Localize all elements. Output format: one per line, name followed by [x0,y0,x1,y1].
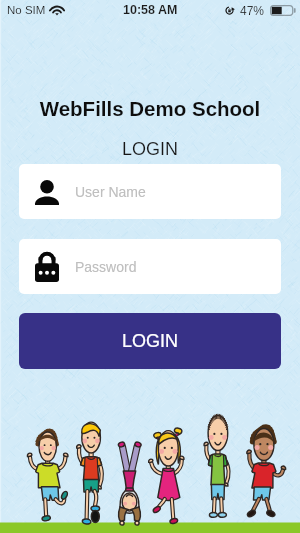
staticText: LOGIN [0,139,300,159]
staticText: Password [75,259,137,275]
staticText: WebFills Demo School [0,97,300,120]
staticText: 10:58 AM [123,3,178,17]
button[interactable]: User name [19,164,281,219]
other: Password [35,251,59,282]
other: User name [35,179,59,205]
button[interactable]: LOGIN [19,313,281,369]
staticText: LOGIN [122,331,179,351]
button[interactable]: Password [19,239,281,294]
staticText: No SIM [7,4,46,17]
staticText: User Name [75,184,146,200]
staticText: 47% [240,4,265,17]
